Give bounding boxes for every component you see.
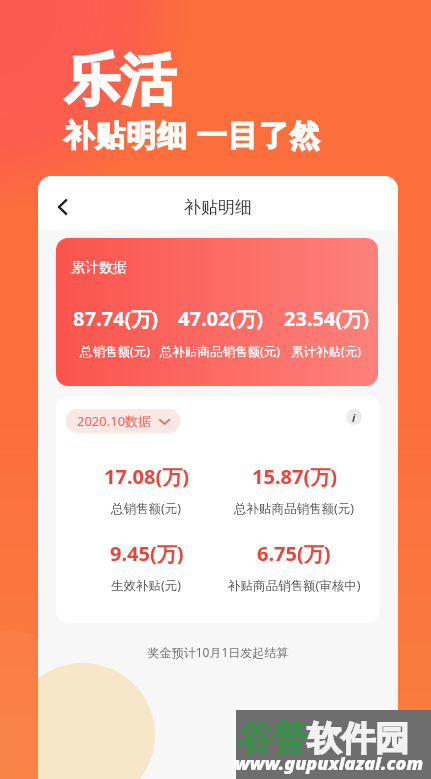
staticText: 软件园 bbox=[307, 717, 409, 760]
button[interactable]: 2020.10数据 bbox=[66, 409, 180, 433]
button[interactable]: Info bbox=[346, 409, 362, 425]
staticText: 6.75(万) bbox=[257, 540, 331, 567]
staticText: 奖金预计10月1日发起结算 bbox=[38, 644, 398, 660]
staticText: 总销售额(元) bbox=[111, 500, 182, 517]
staticText: www.gupuxlazal.com bbox=[235, 751, 424, 776]
staticText: 补贴明细 bbox=[184, 197, 252, 218]
staticText: 谷普 bbox=[239, 717, 307, 760]
staticText: 补贴明细 一目了然 bbox=[64, 114, 321, 155]
staticText: i bbox=[352, 410, 356, 425]
staticText: 生效补贴(元) bbox=[111, 577, 182, 594]
staticText: 总补贴商品销售额(元) bbox=[234, 500, 355, 517]
staticText: 累计补贴(元) bbox=[291, 343, 362, 360]
staticText: 47.02(万) bbox=[178, 305, 263, 332]
staticText: 乐活 bbox=[64, 46, 176, 115]
staticText: 累计数据 bbox=[71, 259, 127, 277]
staticText: 2020.10数据 bbox=[77, 412, 152, 430]
staticText: 87.74(万) bbox=[73, 305, 158, 332]
staticText: 15.87(万) bbox=[252, 463, 337, 490]
staticText: 补贴商品销售额(审核中) bbox=[228, 577, 361, 594]
staticText: 17.08(万) bbox=[104, 463, 189, 490]
staticText: 总销售额(元) bbox=[80, 343, 151, 360]
staticText: 23.54(万) bbox=[284, 305, 369, 332]
staticText: 9.45(万) bbox=[110, 540, 184, 567]
button[interactable]: Back bbox=[45, 189, 81, 225]
staticText: 总补贴商品销售额(元) bbox=[160, 343, 281, 360]
